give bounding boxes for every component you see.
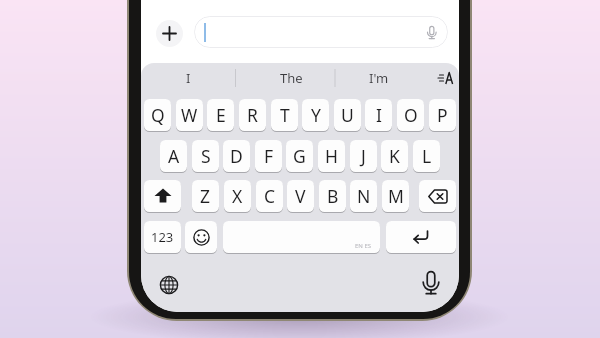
staticText: A [168,144,180,168]
staticText: Z [200,184,211,208]
staticText: I'm [369,69,389,87]
button[interactable]: G [286,140,313,172]
staticText: B [327,184,339,208]
button[interactable] [156,20,183,47]
button[interactable]: E [207,99,234,131]
button[interactable]: EN ES [223,221,380,253]
button[interactable]: A [160,140,187,172]
staticText: W [181,103,198,127]
staticText: X [232,184,243,208]
button[interactable]: B [319,180,346,212]
button[interactable] [431,66,459,90]
staticText: J [361,144,366,168]
staticText: S [201,144,211,168]
button[interactable]: N [350,180,377,212]
button[interactable]: F [255,140,282,172]
staticText: N [357,184,371,208]
button[interactable]: Z [192,180,219,212]
staticText: Y [311,103,321,127]
button[interactable]: O [397,99,424,131]
button[interactable]: P [429,99,456,131]
button[interactable]: Q [144,99,171,131]
button[interactable] [185,221,217,253]
button[interactable]: K [381,140,408,172]
staticText: K [389,144,400,168]
staticText: 123 [151,228,174,246]
button[interactable]: L [413,140,440,172]
button[interactable]: I'm [335,66,423,90]
button[interactable]: X [224,180,251,212]
staticText: O [404,103,418,127]
button[interactable]: R [239,99,266,131]
staticText: V [295,184,306,208]
staticText: G [293,144,306,168]
button[interactable]: Y [302,99,329,131]
button[interactable] [194,16,448,48]
staticText: EN ES [355,242,372,250]
button[interactable] [144,180,181,212]
staticText: The [280,69,303,87]
staticText: I [376,103,382,127]
staticText: T [280,103,290,127]
staticText: I [186,69,191,87]
button[interactable]: 123 [144,221,181,253]
button[interactable]: M [382,180,409,212]
button[interactable]: The [241,66,341,90]
button[interactable]: T [271,99,298,131]
staticText: C [264,184,276,208]
staticText: E [216,103,226,127]
button[interactable]: D [223,140,250,172]
button[interactable] [419,180,456,212]
button[interactable]: J [350,140,377,172]
staticText: M [388,184,404,208]
button[interactable] [386,221,456,253]
button[interactable]: I [365,99,392,131]
staticText: U [341,103,354,127]
button[interactable]: I [141,66,235,90]
staticText: R [247,103,258,127]
button[interactable]: V [287,180,314,212]
staticText: F [264,144,274,168]
staticText: Q [151,103,165,127]
button[interactable]: W [176,99,203,131]
button[interactable]: C [256,180,283,212]
button[interactable]: U [334,99,361,131]
staticText: D [230,144,243,168]
staticText: L [422,144,432,168]
button[interactable] [154,270,184,300]
button[interactable]: H [318,140,345,172]
button[interactable]: S [192,140,219,172]
button[interactable] [416,270,446,300]
staticText: H [325,144,338,168]
staticText: P [437,103,448,127]
